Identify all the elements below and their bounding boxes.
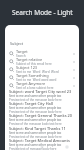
staticText: Sent of a long subject here — [16, 86, 54, 89]
staticText: Sent to me and some other people too — [9, 118, 62, 122]
staticText: Sent to me, Word word word — [16, 78, 57, 81]
button[interactable]: Back — [14, 144, 20, 150]
staticText: Subject — [10, 41, 24, 46]
staticText: Search Mode - Light — [12, 8, 73, 17]
staticText: Sent to me and some other people too — [9, 94, 62, 98]
button[interactable]: Target — [5, 49, 79, 57]
button[interactable]: Remove — [71, 75, 76, 80]
button[interactable]: Target Something — [5, 73, 79, 81]
staticText: Subject: Kind Target Thanks 11 — [9, 126, 66, 131]
button[interactable]: Home — [39, 144, 45, 150]
staticText: Target Anymore — [16, 81, 46, 86]
staticText: Sent to me and some other people too — [9, 143, 62, 147]
staticText: Subject: Target Medical Amounts — [9, 138, 70, 143]
staticText: Target relative — [16, 57, 43, 62]
button[interactable]: Subject 123 — [5, 65, 79, 73]
button[interactable]: Target Anymore — [5, 81, 79, 89]
staticText: Subject of this email here — [16, 62, 52, 65]
staticText: Preview text of message body here — [9, 147, 57, 150]
button[interactable]: Subject: Target General Thanks 20 — [5, 113, 79, 125]
button[interactable]: Subject: Kind Target Thanks 11 — [5, 126, 79, 138]
staticText: Search — [16, 54, 26, 57]
staticText: Preview text of the message body here — [9, 135, 62, 138]
button[interactable]: Subject: Target Medical Amounts — [5, 138, 79, 150]
staticText: Preview text of the message body here — [9, 110, 62, 113]
staticText: Target — [16, 49, 28, 54]
staticText: Target Something — [16, 73, 49, 78]
staticText: Subject: word Target City word 23 — [9, 89, 72, 94]
staticText: Subject: Target City Hall — [9, 101, 53, 106]
button[interactable]: Remove — [71, 67, 76, 72]
button[interactable]: Remove — [71, 83, 76, 88]
button[interactable]: Remove — [71, 51, 76, 56]
staticText: Subject: Target General Thanks 20 — [9, 113, 73, 118]
button[interactable]: Remove — [71, 59, 76, 64]
button[interactable]: Recents — [64, 144, 70, 150]
staticText: Sent to me, Word, Word, Word — [16, 70, 59, 73]
staticText: Sent to me and some other people too — [9, 131, 62, 135]
button[interactable]: Subject: word Target City word 23 — [5, 89, 79, 101]
staticText: Subject 123 — [16, 65, 38, 70]
button[interactable]: Target relative — [5, 57, 79, 65]
staticText: Preview of the message body text here — [9, 122, 62, 125]
staticText: Sent to me and some other people too — [9, 106, 62, 110]
staticText: Preview text of the message body here — [9, 98, 62, 101]
button[interactable]: Subject: Target City Hall — [5, 101, 79, 113]
